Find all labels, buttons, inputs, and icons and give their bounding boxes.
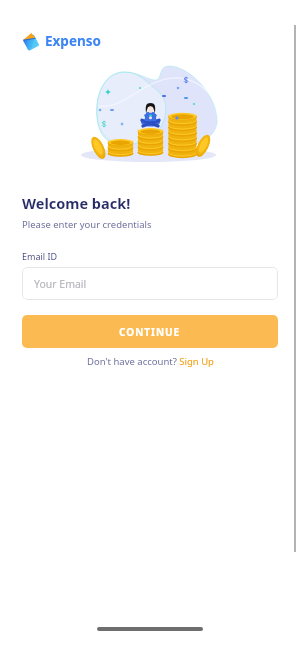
staticText: Expenso (45, 32, 101, 50)
staticText: CONTINUE (119, 325, 181, 339)
staticText: Email ID (22, 250, 58, 262)
button[interactable]: Expenso (21, 31, 101, 50)
staticText: Don't have account? Sign Up (87, 355, 214, 368)
button[interactable]: CONTINUE (22, 315, 278, 348)
staticText: Your Email (34, 277, 87, 291)
button[interactable]: Your Email (22, 267, 278, 300)
button[interactable]: Don't have account? Sign Up (87, 355, 214, 368)
staticText: Welcome back! (22, 193, 131, 213)
staticText: Please enter your credentials (22, 218, 152, 231)
